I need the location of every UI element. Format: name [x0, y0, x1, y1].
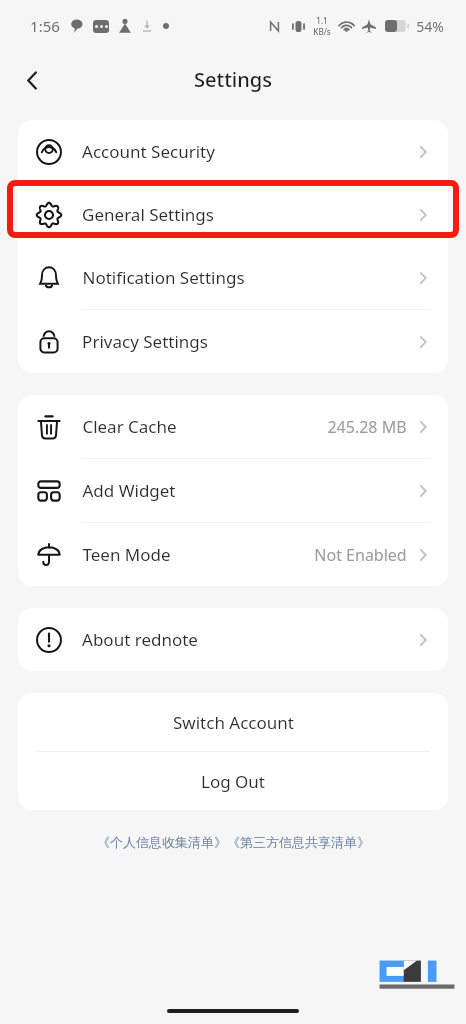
staticText: 1:56 — [30, 16, 60, 36]
staticText: Notification Settings — [82, 266, 245, 289]
button[interactable]: Log Out — [18, 752, 448, 810]
staticText: 《个人信息收集清单》《第三方信息共享清单》 — [97, 834, 370, 850]
staticText: Add Widget — [82, 479, 176, 502]
staticText: Log Out — [201, 770, 265, 793]
button[interactable]: Back — [9, 57, 55, 103]
button[interactable]: 《个人信息收集清单》《第三方信息共享清单》 — [97, 834, 370, 850]
staticText: Teen Mode — [82, 543, 171, 566]
staticText: Privacy Settings — [82, 330, 208, 353]
staticText: Clear Cache — [82, 415, 177, 438]
staticText: Switch Account — [173, 711, 294, 734]
staticText: General Settings — [82, 203, 214, 226]
button[interactable]: Add Widget — [18, 459, 448, 522]
button[interactable]: Clear Cache — [18, 395, 448, 458]
button[interactable]: General Settings — [18, 183, 448, 246]
staticText: Settings — [194, 66, 272, 93]
button[interactable]: About rednote — [18, 608, 448, 671]
staticText: 245.28 MB — [327, 416, 407, 438]
button[interactable]: Account Security — [18, 120, 448, 183]
staticText: 54% — [416, 17, 444, 36]
staticText: Not Enabled — [314, 544, 407, 566]
staticText: KB/s — [313, 26, 331, 37]
button[interactable]: Switch Account — [18, 693, 448, 751]
button[interactable]: Teen Mode — [18, 523, 448, 586]
staticText: Account Security — [82, 140, 215, 163]
staticText: 1.1 — [316, 15, 328, 26]
button[interactable]: Notification Settings — [18, 246, 448, 309]
button[interactable]: Privacy Settings — [18, 310, 448, 373]
staticText: About rednote — [82, 628, 198, 651]
